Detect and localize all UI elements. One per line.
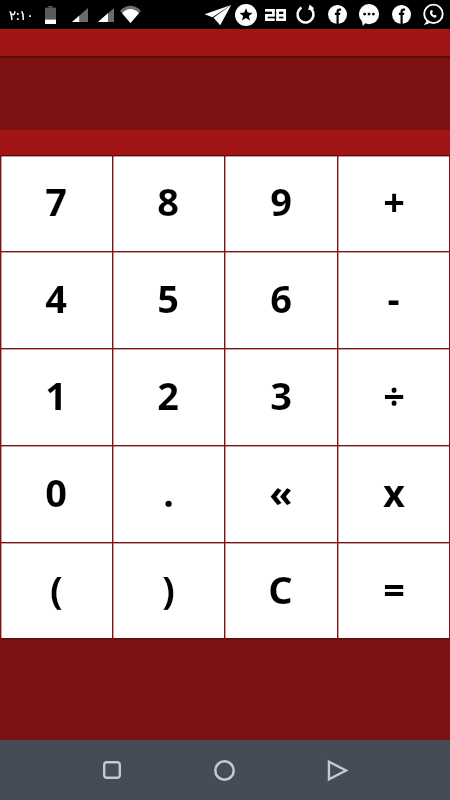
staticText: 5	[157, 272, 179, 324]
staticText: x	[383, 466, 405, 518]
button[interactable]: Home	[168, 740, 281, 800]
button[interactable]: -	[337, 251, 450, 348]
staticText: -	[387, 272, 400, 324]
staticText: 9	[270, 175, 292, 227]
staticText: C	[268, 563, 293, 615]
button[interactable]: +	[337, 155, 450, 251]
button[interactable]: (	[0, 542, 112, 639]
staticText: 1	[45, 369, 67, 421]
button[interactable]: 4	[0, 251, 112, 348]
staticText: (	[50, 563, 63, 615]
button[interactable]: .	[112, 445, 224, 542]
staticText: 2	[157, 369, 179, 421]
staticText: «	[269, 466, 293, 518]
button[interactable]: C	[224, 542, 337, 639]
button[interactable]: 6	[224, 251, 337, 348]
staticText: 0	[45, 466, 67, 518]
button[interactable]: 1	[0, 348, 112, 445]
button[interactable]: 7	[0, 155, 112, 251]
staticText: =	[383, 563, 405, 615]
staticText: +	[383, 175, 405, 227]
staticText: ۲:۱۰	[9, 6, 34, 24]
staticText: 7	[45, 175, 67, 227]
staticText: 4	[45, 272, 67, 324]
button[interactable]: 9	[224, 155, 337, 251]
staticText: 3	[270, 369, 292, 421]
button[interactable]: ÷	[337, 348, 450, 445]
button[interactable]: 2	[112, 348, 224, 445]
button[interactable]: x	[337, 445, 450, 542]
staticText: 8	[157, 175, 179, 227]
button[interactable]: Recents	[55, 740, 168, 800]
button[interactable]: 0	[0, 445, 112, 542]
staticText: 6	[270, 272, 292, 324]
button[interactable]: Back	[281, 740, 394, 800]
button[interactable]: 3	[224, 348, 337, 445]
staticText: )	[162, 563, 175, 615]
button[interactable]: 8	[112, 155, 224, 251]
button[interactable]: 5	[112, 251, 224, 348]
button[interactable]: «	[224, 445, 337, 542]
button[interactable]: =	[337, 542, 450, 639]
staticText: ÷	[383, 369, 405, 421]
button[interactable]: )	[112, 542, 224, 639]
staticText: .	[163, 466, 174, 518]
